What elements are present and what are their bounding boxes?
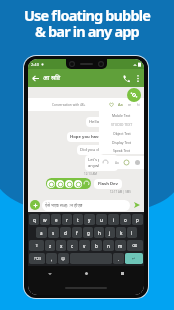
button[interactable]: p xyxy=(132,214,143,225)
button[interactable]: a xyxy=(36,227,47,238)
button[interactable]: Mobile Text xyxy=(99,111,144,120)
staticText: Display Text xyxy=(112,140,131,145)
button[interactable]: y xyxy=(84,214,95,225)
button[interactable]: Action xyxy=(47,180,55,188)
button[interactable]: ?123 xyxy=(29,253,45,264)
staticText: i xyxy=(113,217,115,223)
staticText: ऐसे भएक सत्रह: ?न होएछ xyxy=(45,203,83,208)
button[interactable]: Undo xyxy=(101,158,110,167)
button[interactable]: l xyxy=(127,227,137,238)
button[interactable]: ⌫ xyxy=(127,240,143,251)
button[interactable]: Settings xyxy=(122,158,131,167)
staticText: c xyxy=(71,243,74,249)
staticText: ↵ xyxy=(132,256,136,261)
button[interactable]: , xyxy=(46,253,57,264)
staticText: y xyxy=(88,217,91,223)
staticText: hi xyxy=(137,103,140,107)
button[interactable]: q xyxy=(29,214,39,225)
staticText: q xyxy=(33,217,36,223)
button[interactable]: g xyxy=(83,227,93,238)
button[interactable]: Object Text xyxy=(99,129,144,138)
button[interactable]: STUDIO TEXT xyxy=(99,120,144,129)
button[interactable]: f xyxy=(72,227,82,238)
staticText: d xyxy=(64,230,67,236)
staticText: s xyxy=(52,230,55,236)
button[interactable]: j xyxy=(105,227,115,238)
button[interactable]: r xyxy=(62,214,72,225)
button[interactable]: Aa xyxy=(116,100,125,109)
button[interactable]: x xyxy=(56,240,66,251)
staticText: Did you ch xyxy=(80,147,101,153)
button[interactable]: o xyxy=(120,214,131,225)
staticText: STUDIO TEXT xyxy=(111,122,133,127)
button[interactable]: . xyxy=(113,253,124,264)
button[interactable]: Let's pos to w xyxy=(88,157,115,169)
button[interactable]: Speak Text xyxy=(99,147,144,154)
button[interactable]: e xyxy=(51,214,61,225)
staticText: r xyxy=(66,217,68,223)
button[interactable]: u xyxy=(96,214,107,225)
button[interactable]: Action xyxy=(74,180,82,188)
staticText: 12:13 AM xyxy=(84,172,144,176)
button[interactable]: ⇧ xyxy=(29,240,44,251)
button[interactable]: Recents xyxy=(118,269,127,278)
button[interactable]: Aa xyxy=(112,158,121,167)
button[interactable]: Hello, xyxy=(89,119,101,125)
button[interactable]: c xyxy=(67,240,78,251)
button[interactable]: Action xyxy=(65,180,73,188)
staticText: आ स्रष्टि xyxy=(43,74,61,82)
button[interactable]: Hope you have xyxy=(70,134,101,140)
button[interactable]: Did you ch xyxy=(80,147,101,153)
staticText: ⌫ xyxy=(132,244,138,248)
staticText: n xyxy=(107,243,110,249)
button[interactable]: z xyxy=(45,240,55,251)
button[interactable]: ऐसे भएक सत्रह: ?न होएछ xyxy=(42,200,130,211)
button[interactable]: v xyxy=(79,240,90,251)
staticText: en xyxy=(128,103,132,107)
button[interactable]: t xyxy=(73,214,83,225)
staticText: ⇧ xyxy=(35,243,39,248)
button[interactable]: Floating bubble xyxy=(127,88,141,102)
button[interactable]: ↵ xyxy=(125,253,143,264)
button[interactable]: Close xyxy=(133,158,142,167)
button[interactable]: Favourite xyxy=(107,100,116,109)
button[interactable]: i xyxy=(108,214,119,225)
staticText: anywhere xyxy=(88,163,108,169)
staticText: Object Text xyxy=(113,131,131,136)
button[interactable]: k xyxy=(116,227,126,238)
button[interactable]: Back xyxy=(30,73,40,83)
button[interactable]: d xyxy=(60,227,71,238)
button[interactable]: Send xyxy=(132,200,142,210)
button[interactable]: Flash Dev xyxy=(98,181,118,187)
button[interactable]: hi xyxy=(134,100,143,109)
staticText: Hello, xyxy=(89,119,101,125)
staticText: Aa xyxy=(115,161,119,165)
staticText: p xyxy=(136,217,139,223)
staticText: t xyxy=(77,217,79,223)
button[interactable]: Call xyxy=(121,73,132,84)
button[interactable]: en xyxy=(125,100,134,109)
button[interactable]: b xyxy=(91,240,102,251)
staticText: . xyxy=(118,256,120,262)
staticText: ☺ xyxy=(61,256,66,261)
button[interactable]: More options xyxy=(133,73,143,83)
button[interactable]: n xyxy=(103,240,114,251)
button[interactable]: Display Text xyxy=(99,138,144,147)
staticText: x xyxy=(60,243,63,249)
button[interactable]: Home xyxy=(82,269,91,278)
button[interactable]: Back xyxy=(45,269,54,278)
button[interactable]: h xyxy=(94,227,104,238)
button[interactable]: s xyxy=(48,227,59,238)
button[interactable]: Action xyxy=(47,178,90,189)
button[interactable]: w xyxy=(40,214,50,225)
button[interactable]: ☺ xyxy=(58,253,69,264)
staticText: f xyxy=(76,230,78,236)
staticText: h xyxy=(98,230,101,236)
button[interactable]: Action xyxy=(56,180,64,188)
staticText: u xyxy=(100,217,103,223)
button[interactable]: Add xyxy=(30,200,40,210)
button[interactable]: m xyxy=(115,240,126,251)
staticText: Use floating bubble & bar in any app xyxy=(0,5,174,41)
staticText: z xyxy=(49,243,52,249)
